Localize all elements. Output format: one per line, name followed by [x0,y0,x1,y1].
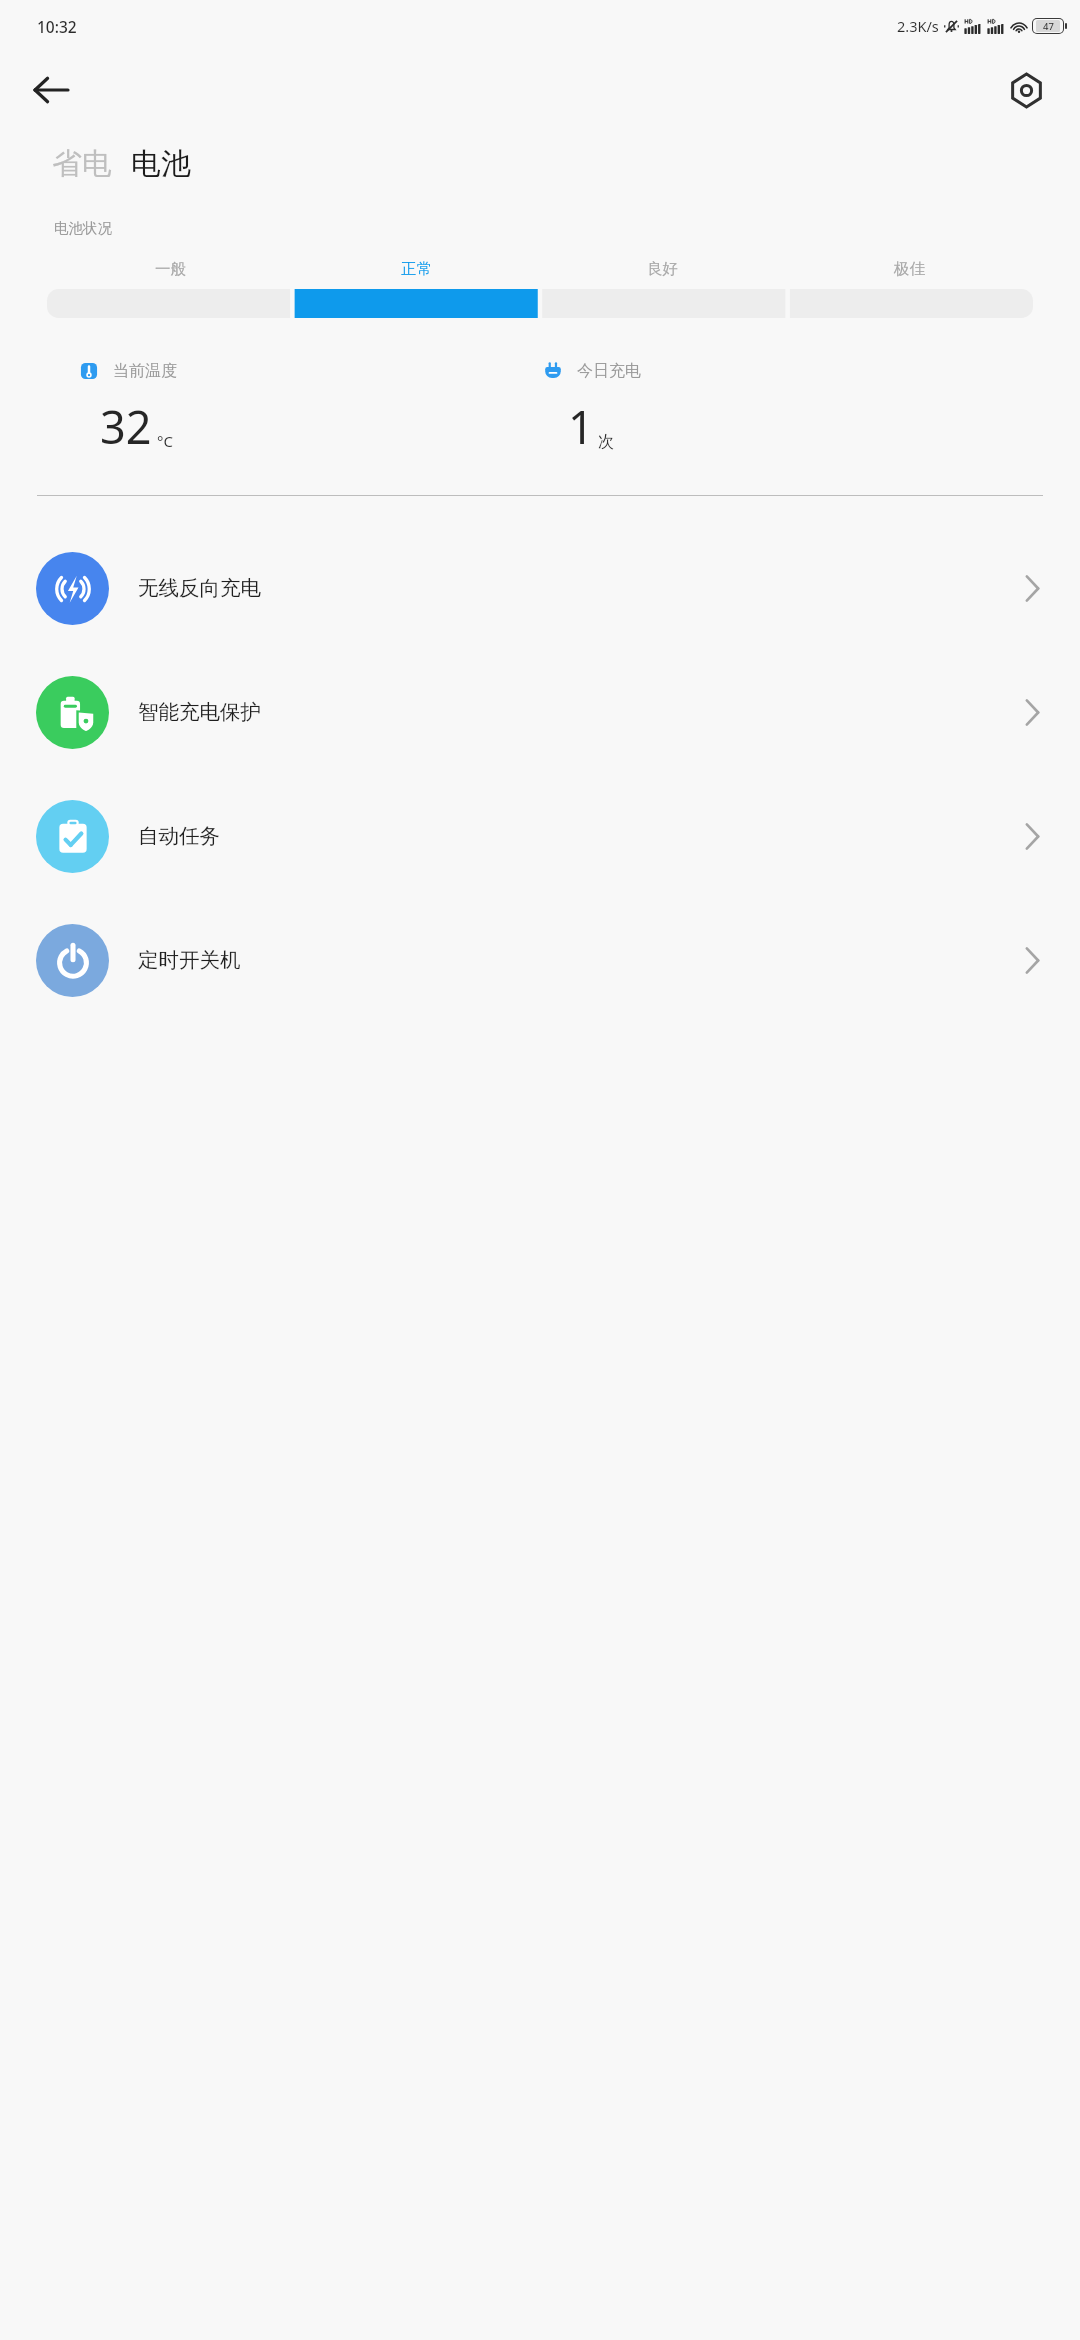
staticText: 当前温度 [113,361,177,381]
staticText: 1 [568,396,594,457]
staticText: 无线反向充电 [138,575,1025,601]
staticText: 智能充电保护 [138,699,1025,725]
button[interactable]: 自动任务 [0,774,1080,898]
button[interactable]: 定时开关机 [0,898,1080,1022]
staticText: 一般 [155,259,186,279]
button[interactable]: Back [22,61,80,119]
staticText: 电池状况 [54,219,112,237]
staticText: 2.3K/s [897,16,939,36]
staticText: 良好 [647,259,678,279]
staticText: 自动任务 [138,823,1025,849]
button[interactable]: 无线反向充电 [0,526,1080,650]
staticText: 次 [598,432,614,452]
staticText: 10:32 [37,16,77,37]
staticText: 正常 [401,259,432,279]
staticText: 47 [1043,20,1054,33]
button[interactable]: 智能充电保护 [0,650,1080,774]
staticText: 今日充电 [577,361,641,381]
staticText: 定时开关机 [138,947,1025,973]
button[interactable]: Settings [997,61,1055,119]
staticText: 32 [100,396,152,457]
staticText: 省电 [52,145,112,183]
staticText: °C [157,431,173,451]
staticText: 极佳 [894,259,925,279]
staticText: 电池 [131,145,191,183]
